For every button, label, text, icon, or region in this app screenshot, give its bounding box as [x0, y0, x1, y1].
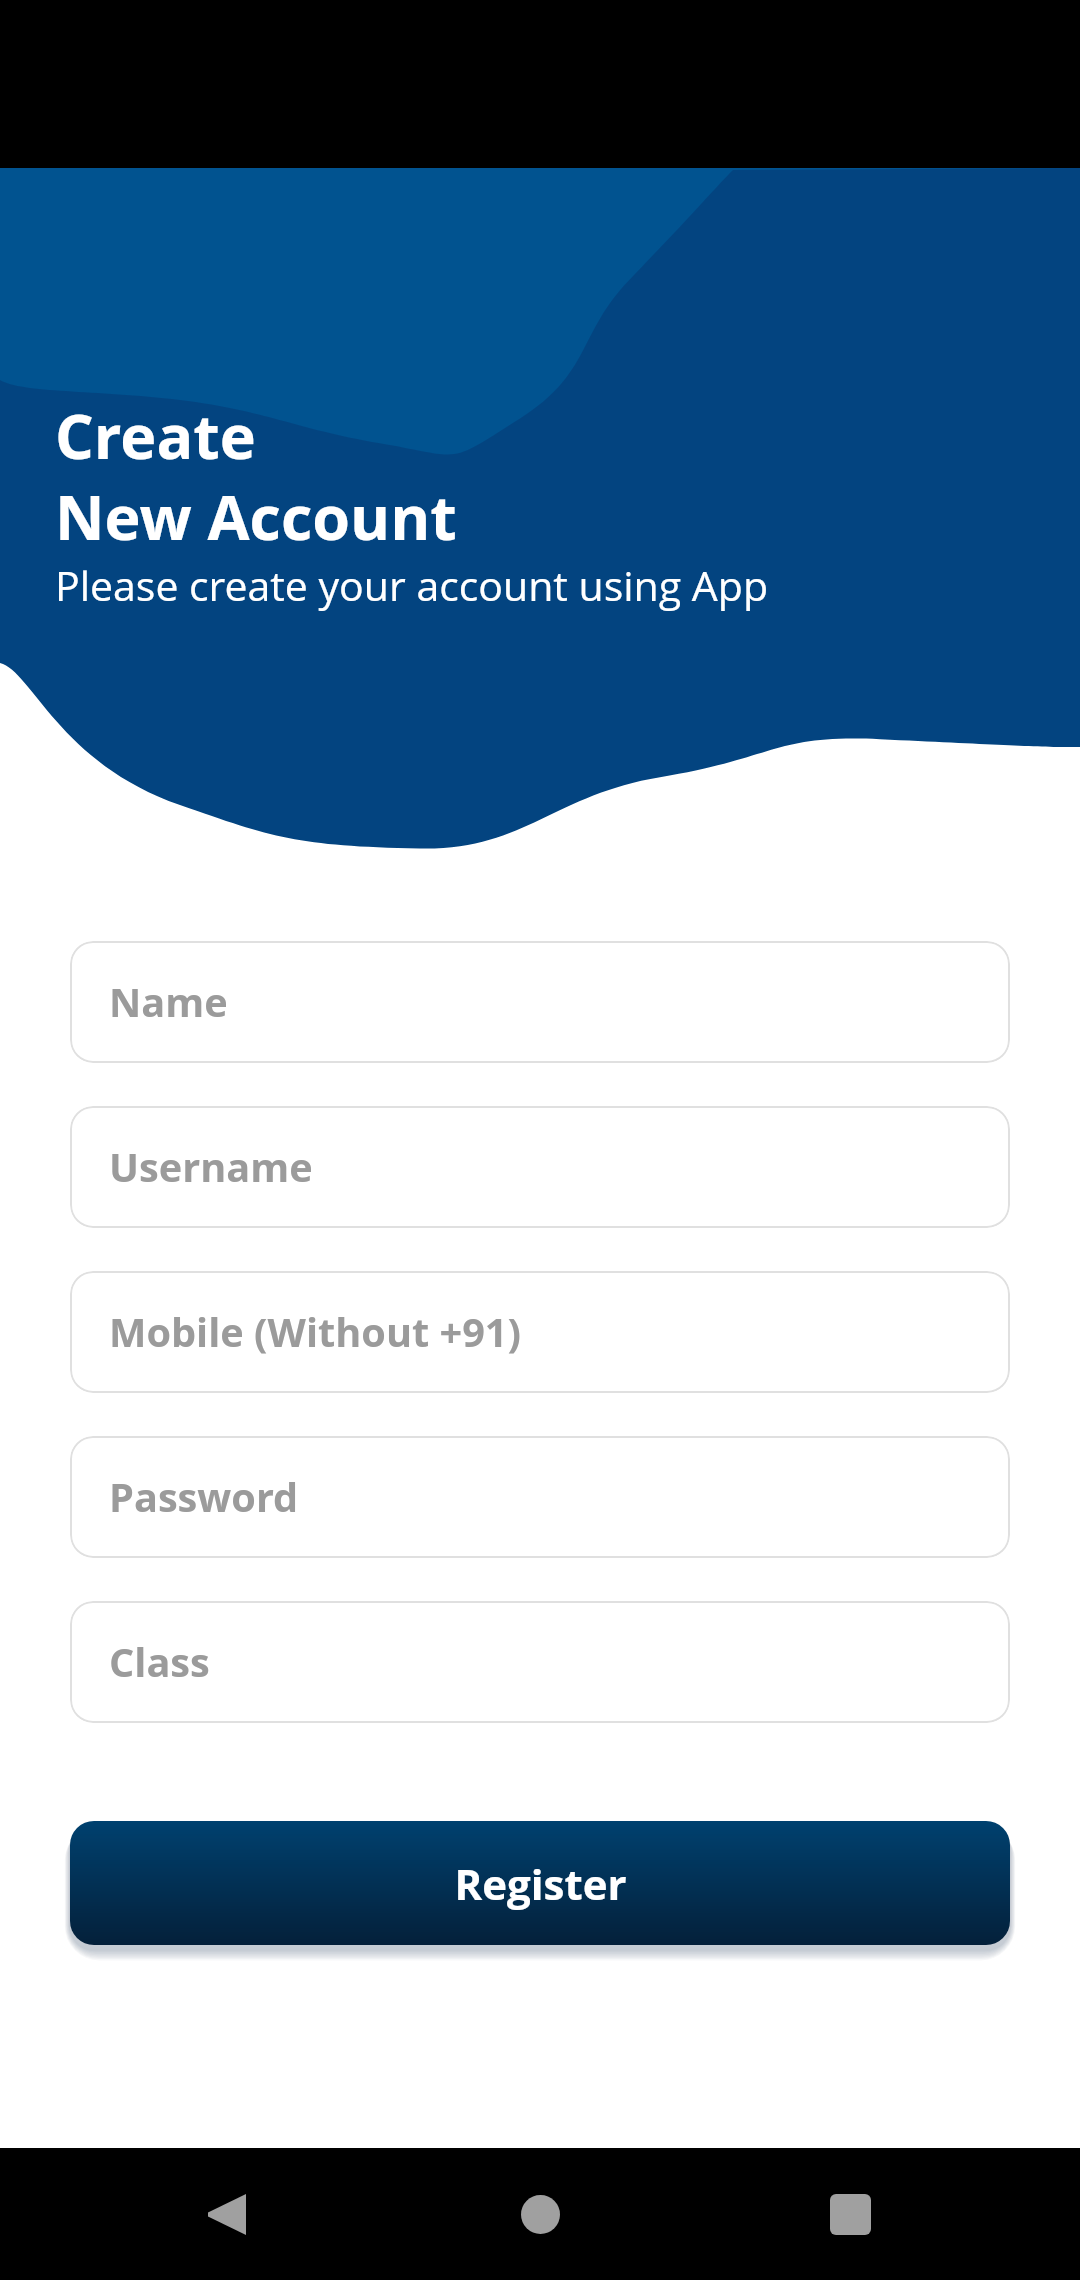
staticText: New Account [55, 475, 457, 558]
button[interactable]: Username [70, 1106, 1010, 1228]
staticText: Class [109, 1635, 210, 1689]
button[interactable]: Class [70, 1601, 1010, 1723]
button[interactable]: Register [70, 1821, 1010, 1945]
button[interactable]: Home [451, 2148, 629, 2280]
button[interactable]: Back [0, 2148, 451, 2280]
staticText: Create [55, 394, 256, 477]
button[interactable]: Name [70, 941, 1010, 1063]
staticText: Mobile (Without +91) [109, 1305, 521, 1359]
button[interactable]: Recent apps [629, 2148, 1072, 2280]
staticText: Name [109, 975, 228, 1029]
button[interactable]: Mobile (Without +91) [70, 1271, 1010, 1393]
staticText: Please create your account using App [55, 557, 769, 613]
staticText: Username [109, 1140, 313, 1194]
staticText: Register [454, 1855, 627, 1912]
button[interactable]: Password [70, 1436, 1010, 1558]
staticText: Password [109, 1470, 299, 1524]
